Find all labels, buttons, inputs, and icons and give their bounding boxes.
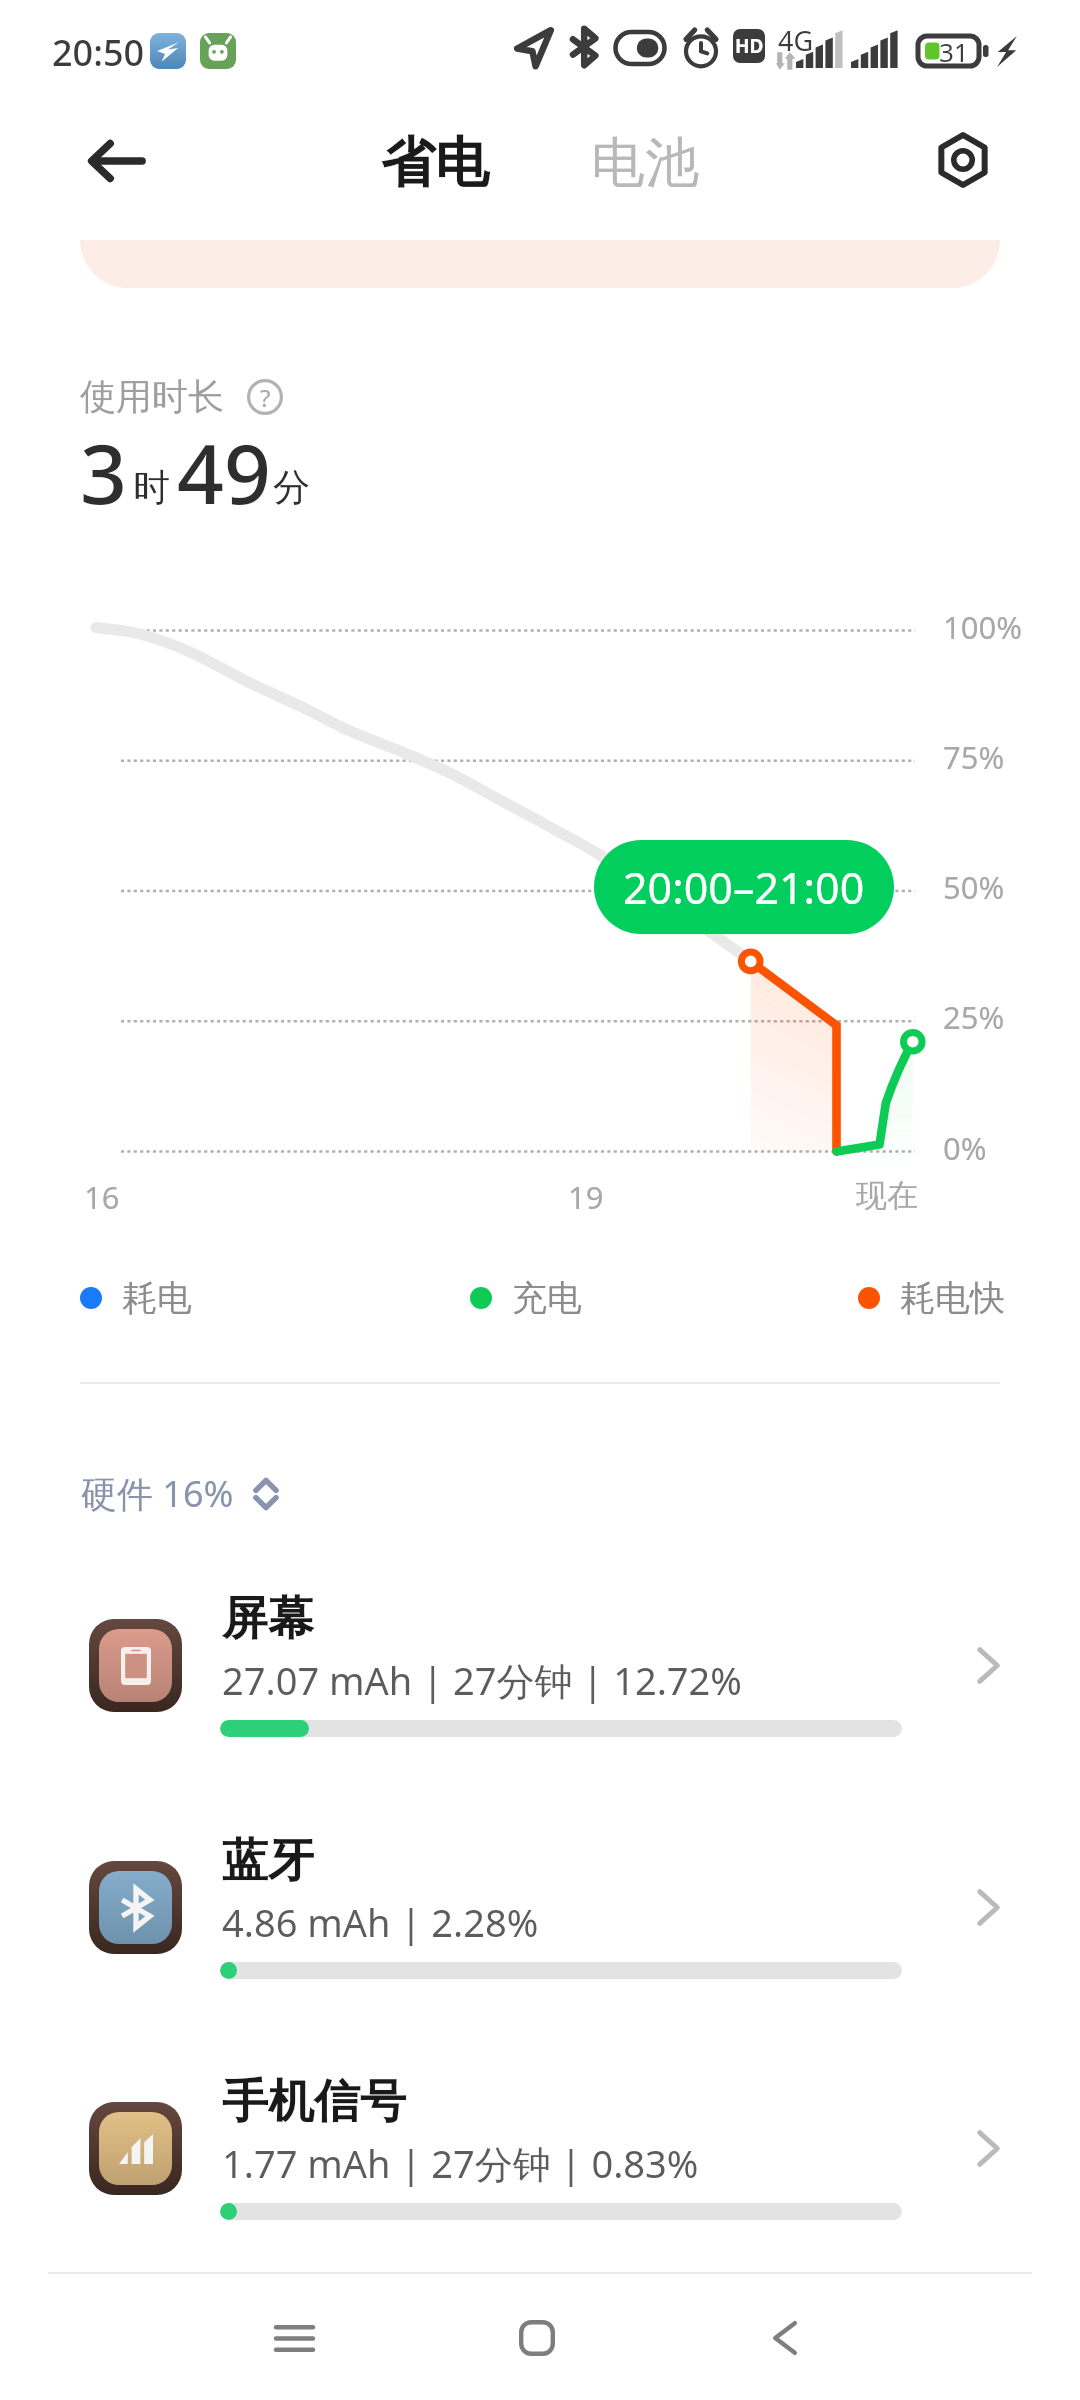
button[interactable]: 电池 [583,119,707,207]
staticText: 分 [273,464,310,511]
button[interactable]: Back [70,115,162,207]
staticText: 75% [943,736,1005,778]
staticText: 100% [943,606,1022,648]
button[interactable]: Power saving tip [80,240,1000,288]
button[interactable]: 屏幕 [0,1618,1080,1758]
staticText: 屏幕 [222,1590,314,1648]
button[interactable]: Help [246,378,284,416]
button[interactable]: Recents [234,2278,354,2398]
staticText: 49 [177,416,271,528]
button[interactable]: 手机信号 [0,2101,1080,2241]
staticText: 省电 [381,129,489,197]
staticText: 31 [939,34,969,69]
staticText: 硬件 16% [81,1469,234,1518]
staticText: 19 [568,1176,604,1218]
staticText: 20:00–21:00 [623,858,865,917]
button[interactable]: Home [477,2278,597,2398]
staticText: 手机信号 [222,2073,406,2131]
button[interactable]: 硬件 16% [81,1465,284,1522]
staticText: 3 [80,416,127,528]
staticText: 1.77 mAh | 27分钟 | 0.83% [222,2137,699,2189]
staticText: 0% [943,1127,987,1169]
staticText: 4G [778,22,814,59]
staticText: ? [260,381,271,414]
staticText: HD [735,33,764,59]
staticText: 时 [133,464,170,511]
staticText: 现在 [856,1176,918,1215]
staticText: 使用时长 [80,374,224,419]
staticText: 充电 [512,1276,582,1320]
staticText: 20:50 [52,28,145,77]
button[interactable]: 蓝牙 [0,1860,1080,2000]
button[interactable]: 省电 [373,119,497,207]
staticText: 16 [84,1176,120,1218]
staticText: 耗电 [122,1276,192,1320]
staticText: 4.86 mAh | 2.28% [222,1896,539,1948]
staticText: 27.07 mAh | 27分钟 | 12.72% [222,1654,742,1706]
staticText: 50% [943,866,1005,908]
staticText: 蓝牙 [222,1832,314,1890]
staticText: 25% [943,996,1005,1038]
button[interactable]: Settings [917,114,1009,206]
staticText: 电池 [591,129,699,197]
staticText: 耗电快 [900,1276,1005,1320]
button[interactable]: Back [725,2278,845,2398]
